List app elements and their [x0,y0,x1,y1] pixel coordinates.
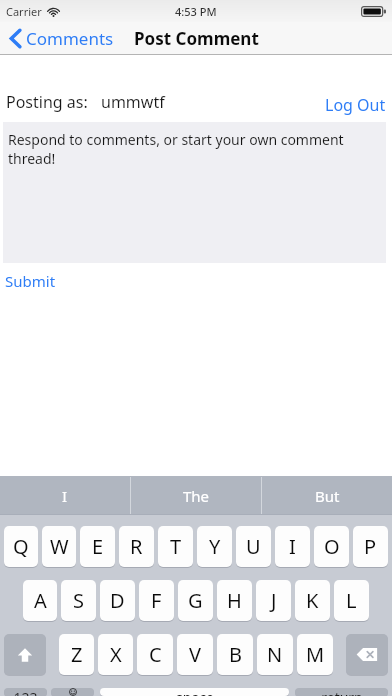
staticText: Q [13,533,29,560]
staticText: F [151,587,162,614]
staticText: P [364,533,377,560]
button[interactable]: X [98,634,133,675]
staticText: space [176,688,214,696]
staticText: D [110,587,125,614]
button[interactable]: Q [4,526,38,567]
staticText: The [183,486,210,506]
button[interactable]: Z [59,634,94,675]
staticText: J [271,587,277,614]
button[interactable]: H [217,580,252,621]
staticText: Log Out [325,94,386,116]
staticText: N [267,641,283,668]
staticText: B [229,641,242,668]
button[interactable]: P [353,526,388,567]
staticText: E [92,533,104,560]
button[interactable]: L [334,580,369,621]
button[interactable]: M [297,634,333,675]
staticText: M [306,641,325,668]
button[interactable]: W [42,526,76,567]
button[interactable]: G [178,580,213,621]
staticText: I [62,486,68,506]
button[interactable]: Submit [0,266,66,296]
button[interactable]: O [314,526,349,567]
button[interactable]: Comments [0,24,122,53]
staticText: H [227,587,242,614]
staticText: But [315,486,340,506]
staticText: Respond to comments, or start your own c… [8,130,382,168]
button[interactable]: space [100,688,289,696]
button[interactable]: F [139,580,174,621]
button[interactable]: Y [197,526,232,567]
button[interactable]: 123 [4,688,47,696]
staticText: G [188,587,203,614]
staticText: ummwtf [101,91,165,113]
button[interactable]: Backspace [346,634,388,675]
staticText: return [321,688,363,696]
staticText: R [130,533,143,560]
staticText: Z [71,641,83,668]
staticText: 4:53 PM [175,4,217,19]
button[interactable]: Shift [4,634,46,675]
staticText: L [346,587,357,614]
staticText: Posting as: [6,91,88,113]
button[interactable]: Emoji keyboard [51,688,94,696]
staticText: 123 [13,688,38,696]
button[interactable]: E [80,526,115,567]
staticText: Y [209,533,221,560]
staticText: C [149,641,162,668]
button[interactable]: Log Out [315,90,392,122]
staticText: Post Comment [134,27,259,50]
staticText: W [50,533,69,560]
button[interactable]: I [0,476,130,515]
button[interactable]: J [256,580,291,621]
staticText: Carrier [6,4,42,19]
button[interactable]: S [61,580,96,621]
staticText: V [189,641,201,668]
staticText: Comments [26,27,114,50]
staticText: K [306,587,319,614]
button[interactable]: U [236,526,271,567]
staticText: X [110,641,122,668]
button[interactable]: V [177,634,213,675]
button[interactable]: R [119,526,154,567]
button[interactable]: I [275,526,310,567]
staticText: S [73,587,84,614]
button[interactable]: K [295,580,330,621]
staticText: I [289,533,296,560]
staticText: O [324,533,340,560]
button[interactable]: The [131,476,261,515]
button[interactable]: Respond to comments, or start your own c… [3,122,386,263]
staticText: U [246,533,261,560]
staticText: T [170,533,182,560]
button[interactable]: But [262,476,392,515]
staticText: A [34,587,47,614]
button[interactable]: T [158,526,193,567]
button[interactable]: B [217,634,253,675]
button[interactable]: A [23,580,57,621]
staticText: Submit [5,271,56,291]
button[interactable]: N [257,634,293,675]
button[interactable]: C [137,634,173,675]
button[interactable]: return [295,688,388,696]
button[interactable]: D [100,580,135,621]
